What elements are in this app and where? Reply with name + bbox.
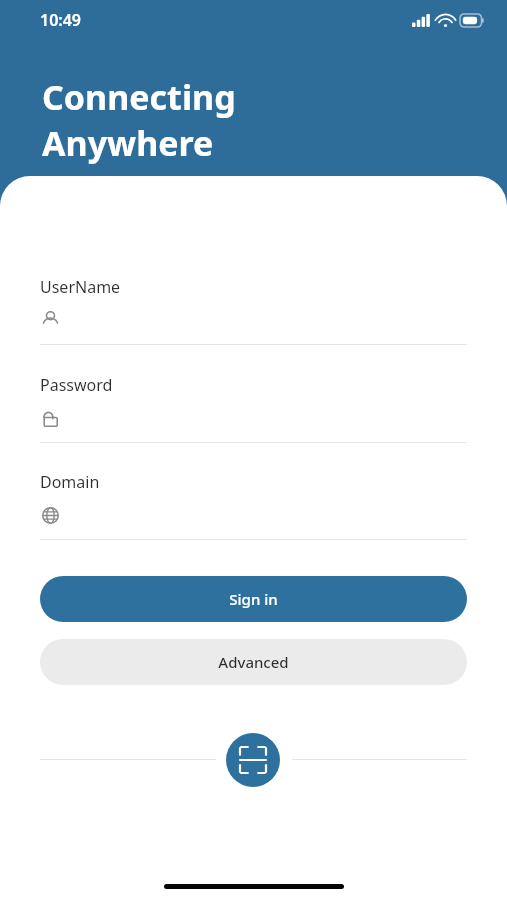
button[interactable]: Advanced [40, 639, 467, 685]
button[interactable]: Sign in [40, 576, 467, 622]
staticText: Sign in [229, 589, 278, 609]
staticText: 10:49 [40, 9, 82, 31]
staticText: UserName [40, 276, 121, 298]
staticText: Anywhere [42, 120, 214, 166]
staticText: Connecting [42, 74, 236, 120]
staticText: Advanced [218, 652, 289, 672]
staticText: Password [40, 374, 113, 396]
staticText: Domain [40, 471, 100, 493]
button[interactable]: Scan QR code [226, 733, 280, 787]
